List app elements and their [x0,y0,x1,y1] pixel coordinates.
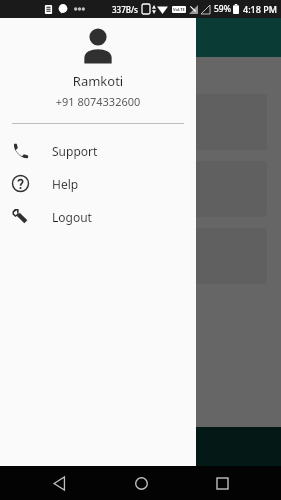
staticText: 4:18 PM [243,3,277,15]
button[interactable]: Support [0,134,196,167]
staticText: SELECT DATE RANGE [16,67,133,82]
staticText: Help [52,176,79,192]
staticText: Support [52,143,98,159]
button[interactable]: Home [119,466,163,500]
button[interactable]: Total Transactions [14,94,267,150]
button[interactable]: Amount Not Activated [14,228,267,284]
button[interactable]: Amount Paid [14,161,267,217]
button[interactable]: Recent apps [200,466,244,500]
staticText: +91 8074332600 [0,94,196,109]
button[interactable]: Logout [0,200,196,233]
staticText: Logout [52,209,92,225]
staticText: 337B/s [112,4,138,15]
staticText: Ramkoti [0,72,196,90]
button[interactable]: Help [0,167,196,200]
staticText: 59% [214,3,231,15]
staticText: VoLTE [173,7,185,12]
button[interactable]: Back [37,466,81,500]
